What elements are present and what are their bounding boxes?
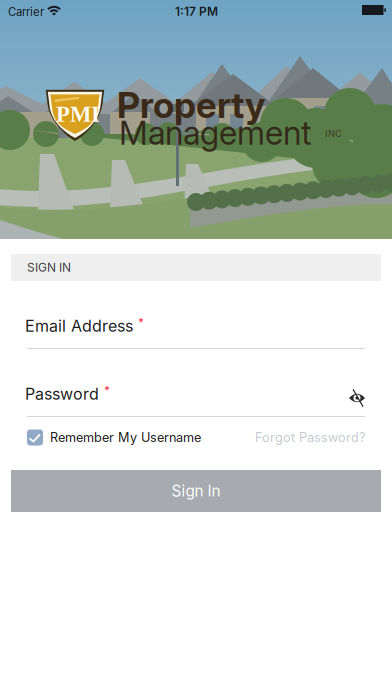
button[interactable]: Forgot Password?	[255, 430, 365, 445]
staticText: Remember My Username	[50, 430, 201, 445]
staticText: SIGN IN	[27, 260, 71, 275]
staticText: *	[104, 383, 110, 396]
staticText: Email Address	[25, 316, 133, 336]
button[interactable]: Remember My Username	[27, 429, 201, 445]
staticText: *	[138, 315, 144, 328]
staticText: INC	[325, 128, 342, 139]
staticText: Forgot Password?	[255, 430, 365, 445]
staticText: Property	[117, 83, 265, 127]
staticText: Management	[119, 113, 311, 152]
staticText: PMI	[56, 101, 100, 127]
button[interactable]: Show password	[349, 382, 365, 406]
button[interactable]: Sign In	[11, 470, 381, 512]
staticText: Sign In	[171, 482, 220, 500]
staticText: 1:17 PM	[175, 4, 218, 18]
staticText: Carrier	[8, 5, 44, 19]
staticText: Password	[25, 384, 99, 404]
